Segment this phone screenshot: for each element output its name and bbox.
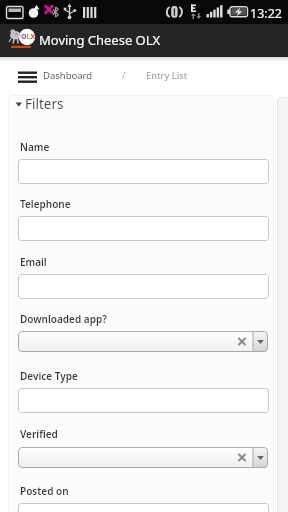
staticText: Moving Cheese OLX	[39, 31, 161, 49]
button[interactable]	[18, 274, 269, 299]
button[interactable]: Entry List	[146, 69, 188, 82]
staticText: Telephone	[20, 197, 71, 211]
staticText: Device Type	[20, 369, 78, 383]
staticText: Name	[20, 140, 50, 154]
button[interactable]: OLX	[8, 26, 36, 54]
staticText: 13:22	[250, 5, 282, 22]
button[interactable]	[12, 65, 44, 89]
button[interactable]	[18, 447, 268, 468]
button[interactable]: Dashboard	[43, 69, 93, 82]
staticText: Posted on	[20, 484, 69, 498]
staticText: OLX	[21, 32, 36, 42]
staticText: Email	[20, 255, 47, 269]
staticText: Downloaded app?	[20, 312, 107, 326]
staticText: Filters	[25, 95, 64, 113]
button[interactable]	[18, 216, 269, 241]
button[interactable]	[18, 503, 269, 512]
button[interactable]	[18, 388, 269, 413]
staticText: Verified	[20, 427, 58, 441]
button[interactable]: Filters	[14, 95, 64, 113]
button[interactable]	[18, 159, 269, 184]
button[interactable]	[18, 331, 268, 352]
staticText: /	[122, 69, 126, 82]
